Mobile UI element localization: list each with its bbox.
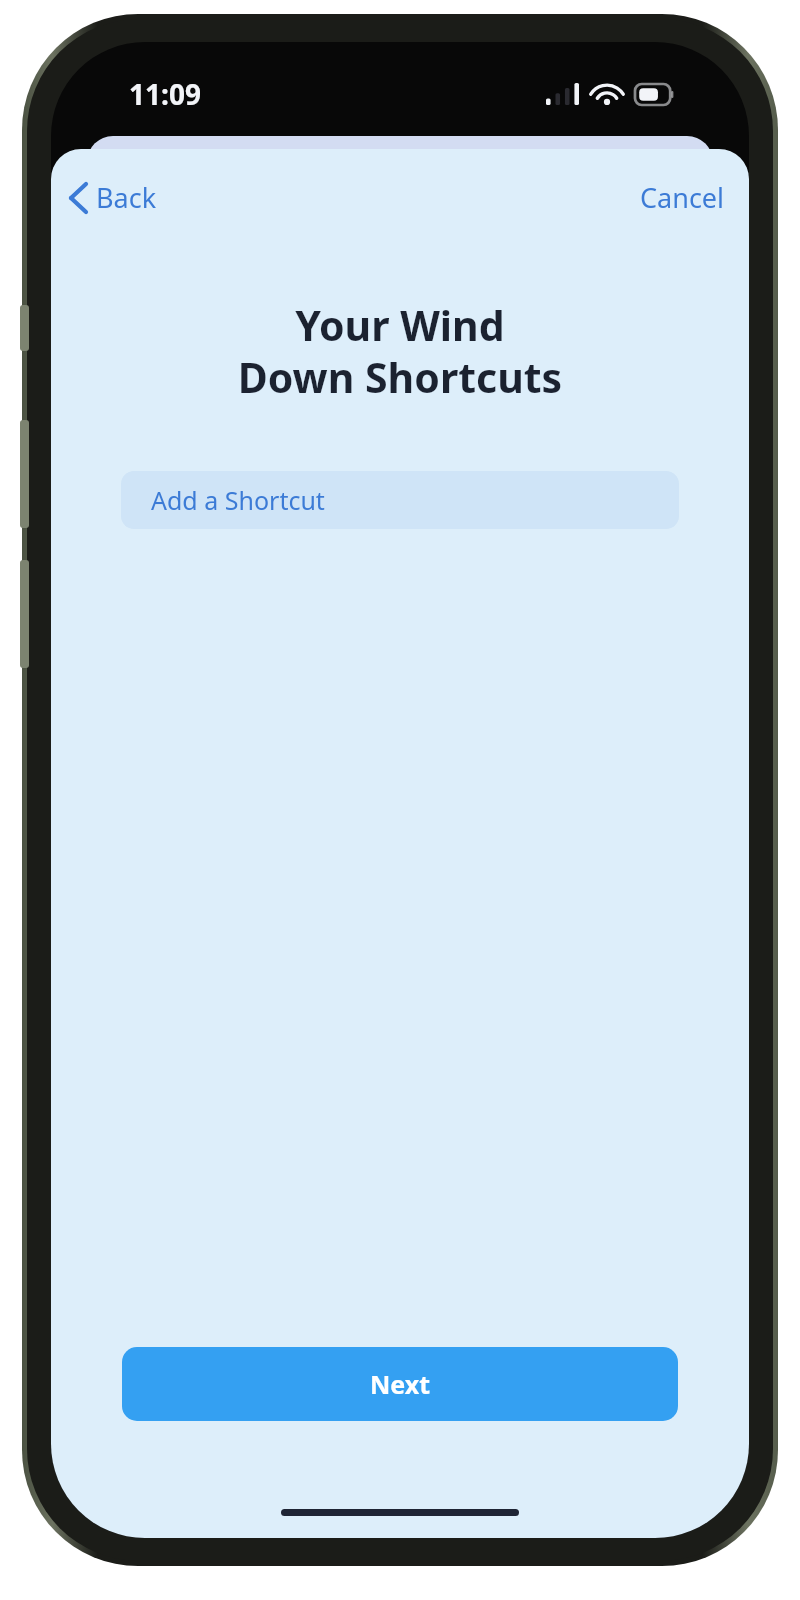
- staticText: 11:09: [129, 75, 201, 113]
- staticText: Your Wind Down Shortcuts: [107, 297, 693, 405]
- staticText: Add a Shortcut: [151, 483, 325, 517]
- staticText: Next: [370, 1367, 431, 1401]
- button[interactable]: Add a Shortcut: [121, 471, 679, 529]
- button[interactable]: Back: [61, 171, 165, 224]
- staticText: Back: [96, 179, 157, 216]
- staticText: Cancel: [640, 179, 725, 216]
- button[interactable]: Next: [122, 1347, 678, 1421]
- button[interactable]: Cancel: [630, 171, 735, 224]
